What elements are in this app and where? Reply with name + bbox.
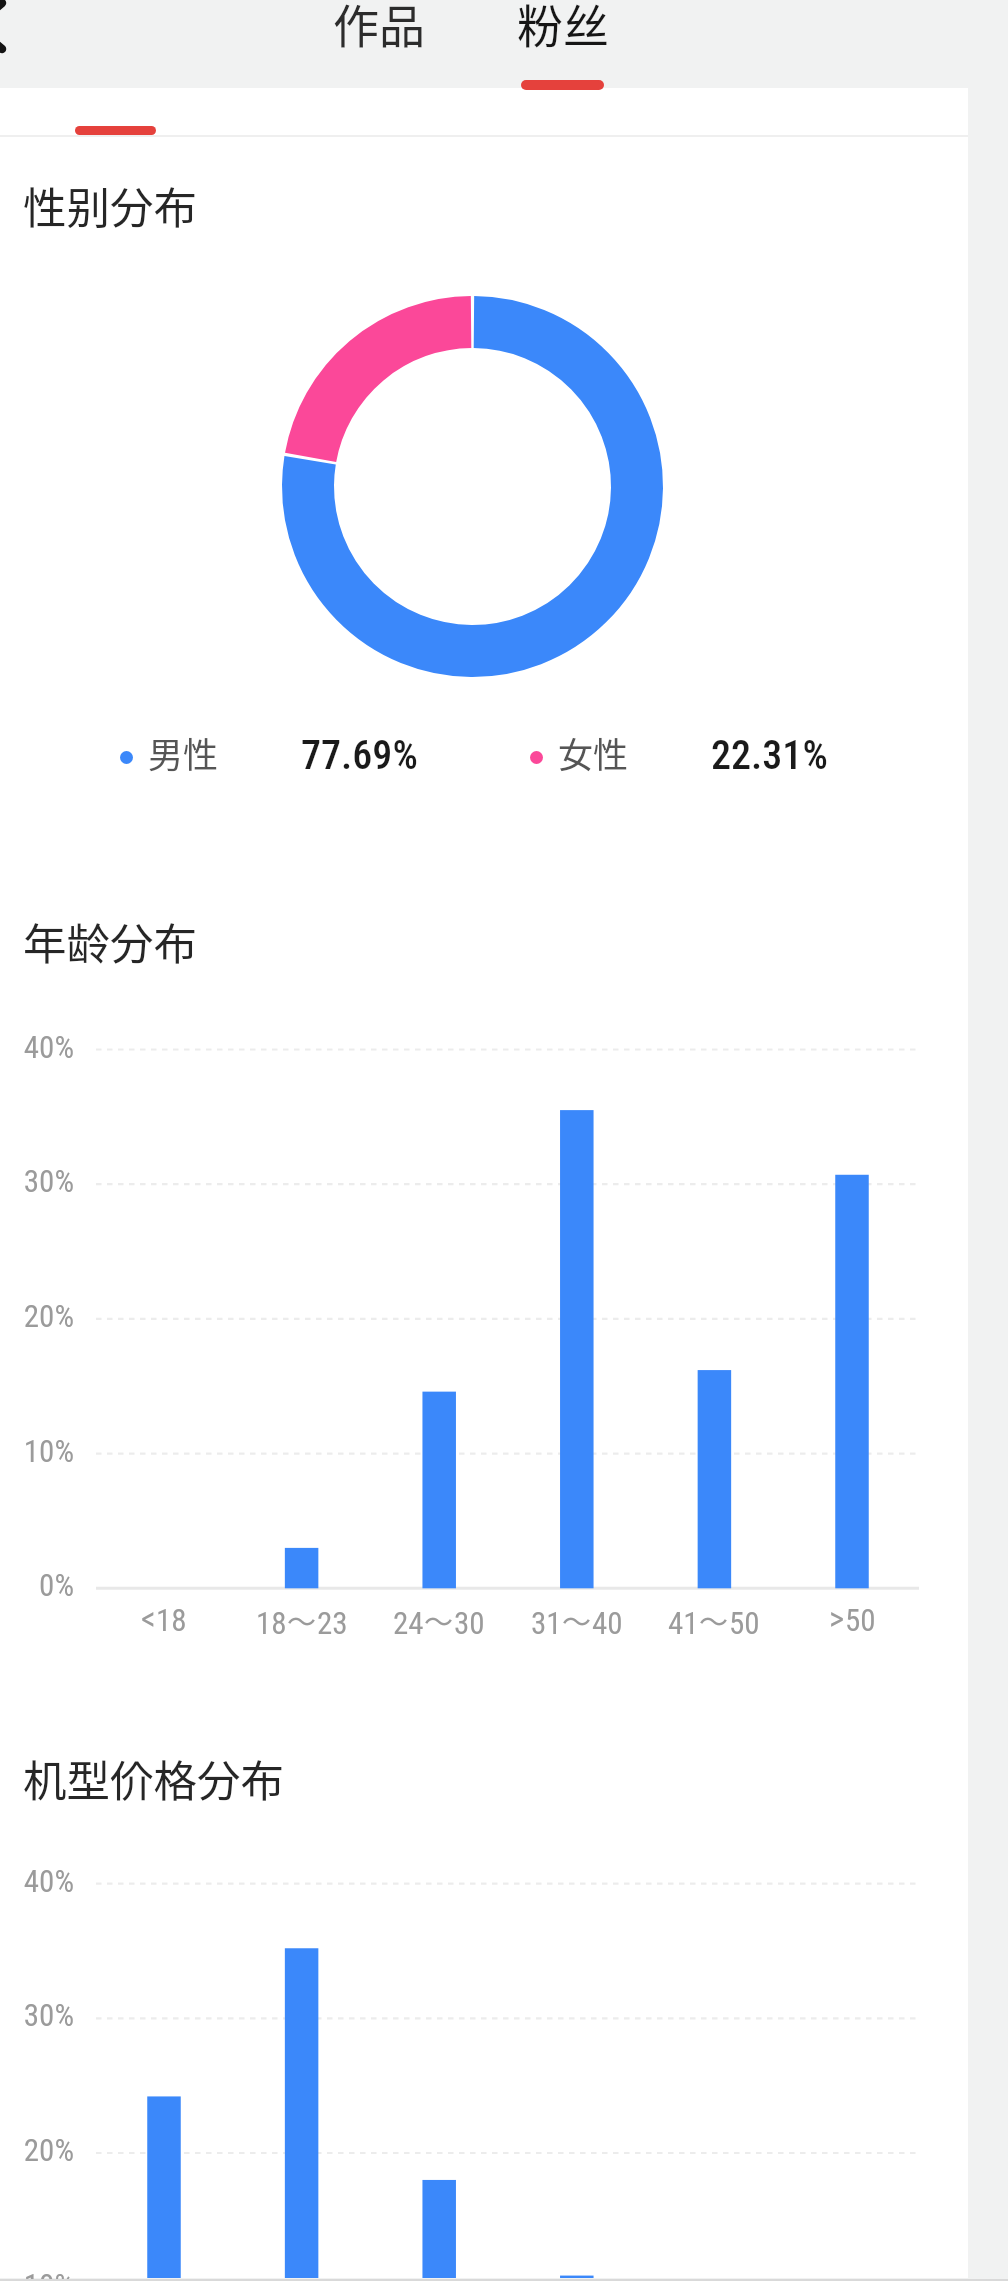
staticText: 77.69% bbox=[301, 732, 418, 779]
staticText: 24 bbox=[393, 1605, 424, 1641]
staticText: 男性 bbox=[148, 727, 219, 778]
staticText: 粉丝 bbox=[517, 0, 609, 57]
staticText: 20% bbox=[0, 2132, 74, 2168]
staticText: 30% bbox=[0, 1163, 74, 1199]
staticText: 10% bbox=[0, 2267, 74, 2284]
staticText: > bbox=[829, 1599, 845, 1638]
staticText: ～ bbox=[287, 1599, 317, 1641]
button[interactable]: Back bbox=[0, 0, 36, 78]
staticText: 机型价格分布 bbox=[23, 1747, 284, 1810]
staticText: 18 bbox=[156, 1602, 187, 1638]
staticText: 年龄分布 bbox=[23, 910, 197, 973]
button[interactable]: 作品 bbox=[300, 0, 457, 67]
staticText: 40% bbox=[0, 1029, 74, 1065]
staticText: 18 bbox=[256, 1605, 287, 1641]
staticText: 作品 bbox=[333, 0, 425, 57]
button[interactable] bbox=[75, 126, 156, 135]
staticText: 30 bbox=[454, 1605, 485, 1641]
staticText: 女性 bbox=[558, 727, 629, 778]
staticText: ～ bbox=[699, 1599, 729, 1641]
staticText: ～ bbox=[424, 1599, 454, 1641]
staticText: 0% bbox=[0, 1567, 74, 1603]
staticText: 性别分布 bbox=[23, 174, 197, 237]
staticText: ～ bbox=[562, 1599, 592, 1641]
staticText: 31 bbox=[531, 1605, 562, 1641]
staticText: 10% bbox=[0, 1433, 74, 1469]
staticText: 50 bbox=[845, 1602, 876, 1638]
staticText: 40% bbox=[0, 1863, 74, 1899]
staticText: 41 bbox=[668, 1605, 699, 1641]
staticText: 40 bbox=[592, 1605, 623, 1641]
button[interactable]: 男性 bbox=[119, 709, 449, 773]
staticText: 50 bbox=[729, 1605, 760, 1641]
staticText: 22.31% bbox=[711, 732, 828, 779]
staticText: 20% bbox=[0, 1298, 74, 1334]
button[interactable]: 女性 bbox=[529, 709, 859, 773]
staticText: < bbox=[141, 1599, 156, 1638]
button[interactable]: 粉丝 bbox=[484, 0, 641, 67]
staticText: 30% bbox=[0, 1997, 74, 2033]
staticText: 23 bbox=[317, 1605, 348, 1641]
